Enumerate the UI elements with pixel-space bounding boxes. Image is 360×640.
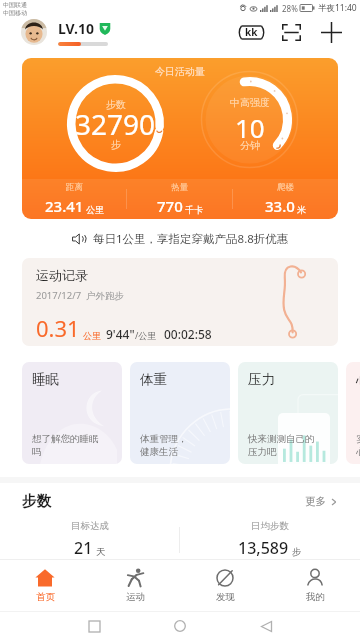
staticText: 23.41 xyxy=(45,196,84,216)
button[interactable]: 体重 xyxy=(130,362,230,464)
staticText: 步 xyxy=(292,546,302,558)
staticText: 我的 xyxy=(306,591,325,603)
button[interactable]: 每日1公里，享指定穿戴产品8.8折优惠 xyxy=(0,219,360,258)
staticText: 10 xyxy=(235,110,265,145)
button[interactable]: 睡眠 xyxy=(22,362,122,464)
staticText: 中高强度 xyxy=(230,96,270,109)
button[interactable]: 今日活动量 xyxy=(22,58,338,219)
staticText: 更多 xyxy=(305,495,326,508)
staticText: 00:02:58 xyxy=(164,326,212,342)
staticText: kk xyxy=(245,25,258,39)
staticText: 半夜11:40 xyxy=(318,2,357,14)
staticText: 9'44" xyxy=(106,326,135,342)
staticText: 33.0 xyxy=(265,196,295,216)
staticText: 今日活动量 xyxy=(155,65,205,78)
staticText: 分钟 xyxy=(240,139,260,152)
button[interactable]: Scan xyxy=(276,17,306,47)
staticText: 心率 xyxy=(356,371,360,388)
staticText: 千卡 xyxy=(185,204,203,215)
button[interactable]: Recents xyxy=(80,612,108,640)
staticText: 13,589 xyxy=(238,537,289,559)
button[interactable]: Home xyxy=(166,612,194,640)
staticText: 每日1公里，享指定穿戴产品8.8折优惠 xyxy=(93,231,289,247)
button[interactable]: 更多 xyxy=(305,495,338,508)
staticText: 热量 xyxy=(171,182,188,193)
staticText: 步 xyxy=(111,138,121,151)
button[interactable]: 运动记录 xyxy=(22,258,338,346)
staticText: 米 xyxy=(297,204,306,215)
staticText: /公里 xyxy=(135,329,157,341)
button[interactable]: 我的 xyxy=(270,559,360,611)
staticText: 步数 xyxy=(106,98,126,111)
staticText: 快来测测自己的 压力吧 xyxy=(248,433,320,457)
button[interactable]: 发现 xyxy=(180,559,270,611)
staticText: 公里 xyxy=(86,204,104,215)
staticText: 日均步数 xyxy=(251,520,289,532)
staticText: 2017/12/7 户外跑步 xyxy=(36,289,125,302)
staticText: 步数 xyxy=(22,492,51,510)
button[interactable]: Back xyxy=(252,612,280,640)
button[interactable]: KK record xyxy=(236,17,266,47)
staticText: 发现 xyxy=(216,591,235,603)
staticText: 0.31 xyxy=(36,313,80,343)
button[interactable]: 压力 xyxy=(238,362,338,464)
staticText: 28% xyxy=(282,3,298,14)
staticText: 32790 xyxy=(75,105,156,143)
staticText: 实时监测 心率变化 xyxy=(356,433,360,457)
staticText: 压力 xyxy=(248,371,275,388)
staticText: 运动记录 xyxy=(36,267,88,283)
staticText: 爬楼 xyxy=(277,182,294,193)
staticText: 中国联通 xyxy=(3,1,27,9)
staticText: 天 xyxy=(96,546,106,558)
staticText: 中国移动 xyxy=(3,9,27,16)
button[interactable]: 首页 xyxy=(0,559,90,611)
staticText: 770 xyxy=(157,196,183,216)
staticText: 21 xyxy=(74,537,93,559)
staticText: 运动 xyxy=(126,591,145,603)
staticText: LV.10 xyxy=(58,19,94,38)
staticText: 想了解您的睡眠 吗 xyxy=(32,433,104,457)
button[interactable]: Profile xyxy=(21,19,47,45)
staticText: 首页 xyxy=(36,591,55,603)
staticText: 睡眠 xyxy=(32,371,59,388)
staticText: 体重 xyxy=(140,371,167,388)
staticText: 距离 xyxy=(66,182,83,193)
button[interactable]: 运动 xyxy=(90,559,180,611)
staticText: 公里 xyxy=(83,330,101,341)
staticText: 体重管理， 健康生活 xyxy=(140,433,212,457)
button[interactable]: 心率 xyxy=(346,362,360,464)
button[interactable]: Add xyxy=(316,17,346,47)
staticText: 目标达成 xyxy=(71,520,109,532)
